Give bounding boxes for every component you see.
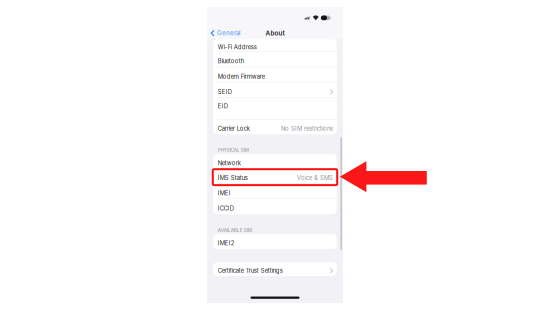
button[interactable]: IMEI2 — [213, 234, 337, 249]
staticText: IMS Status — [218, 174, 248, 181]
button[interactable]: General — [207, 28, 240, 38]
button[interactable]: SEID — [213, 83, 337, 98]
staticText: PHYSICAL SIM — [218, 147, 249, 153]
staticText: Voice & SMS — [297, 174, 333, 181]
button[interactable]: Certificate Trust Settings — [213, 262, 337, 276]
button[interactable]: EID — [213, 98, 337, 120]
staticText: EID — [218, 102, 228, 110]
button[interactable]: IMS Status — [213, 169, 337, 184]
staticText: General — [217, 29, 240, 37]
button[interactable]: IMEI — [213, 184, 337, 199]
button[interactable]: Carrier Lock — [213, 120, 337, 134]
staticText: No SIM restrictions — [281, 125, 333, 132]
button[interactable]: Wi-Fi Address — [213, 39, 337, 52]
staticText: Modem Firmware — [218, 73, 265, 80]
button[interactable]: Modem Firmware — [213, 67, 337, 83]
button[interactable]: ICCID — [213, 199, 337, 214]
staticText: Certificate Trust Settings — [218, 267, 283, 274]
staticText: ICCID — [218, 205, 234, 212]
button[interactable]: Network — [213, 154, 337, 169]
staticText: Carrier Lock — [218, 125, 250, 132]
staticText: IMEI — [218, 190, 231, 197]
staticText: Bluetooth — [218, 57, 244, 65]
staticText: About — [265, 29, 284, 37]
staticText: AVAILABLE SIM — [218, 227, 252, 233]
staticText: SEID — [218, 88, 232, 95]
staticText: Wi-Fi Address — [218, 43, 257, 51]
button[interactable]: Bluetooth — [213, 52, 337, 67]
staticText: IMEI2 — [218, 239, 235, 247]
staticText: Network — [218, 160, 241, 167]
